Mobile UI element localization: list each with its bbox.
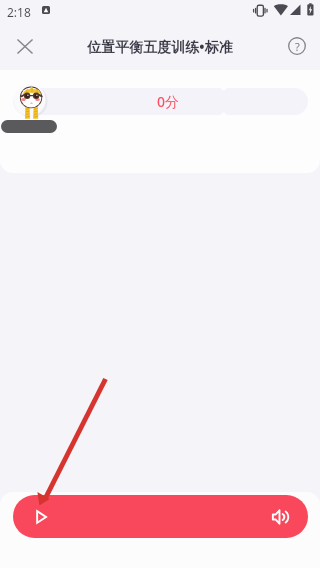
button[interactable]: Play (13, 495, 308, 538)
staticText: ? (295, 39, 300, 54)
staticText: 位置平衡五度训练•标准 (87, 37, 233, 56)
staticText: 2:18 (7, 4, 31, 20)
button[interactable]: Sound (266, 503, 294, 531)
button[interactable]: Play (27, 503, 55, 531)
button[interactable]: Help (278, 28, 316, 66)
button[interactable]: Close (6, 28, 44, 66)
staticText: 0分 (157, 92, 180, 111)
